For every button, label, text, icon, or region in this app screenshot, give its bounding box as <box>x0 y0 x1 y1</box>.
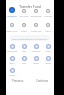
button[interactable] <box>6 22 18 33</box>
button[interactable]: Previous <box>8 78 28 84</box>
button[interactable] <box>30 43 42 53</box>
staticText: Lee <box>18 62 30 65</box>
button[interactable] <box>30 55 42 65</box>
button[interactable] <box>6 7 18 18</box>
button[interactable] <box>6 55 18 65</box>
button[interactable]: Continue <box>32 78 52 84</box>
button[interactable] <box>6 67 18 77</box>
staticText: Dana <box>30 62 42 65</box>
staticText: Wallet <box>42 14 54 17</box>
staticText: Transfer <box>6 14 18 17</box>
staticText: Sam John <box>6 50 18 53</box>
button[interactable] <box>6 43 18 53</box>
button[interactable]: Select a beneficiary to continue <box>10 35 50 41</box>
button[interactable] <box>42 43 54 53</box>
button[interactable] <box>18 7 30 18</box>
staticText: Priya <box>6 74 18 77</box>
staticText: Own Bank <box>18 29 30 32</box>
button[interactable] <box>18 55 30 65</box>
staticText: Omar <box>42 62 54 65</box>
button[interactable] <box>18 22 30 33</box>
button[interactable] <box>42 55 54 65</box>
staticText: Nina <box>42 50 54 53</box>
staticText: Own Acct <box>6 29 18 32</box>
button[interactable] <box>30 22 42 33</box>
button[interactable] <box>42 22 54 33</box>
staticText: Raj K <box>6 62 18 65</box>
staticText: Mia <box>18 50 30 53</box>
staticText: Transfer Fund <box>6 4 54 8</box>
staticText: Other Bk <box>30 29 42 32</box>
button[interactable] <box>30 7 42 18</box>
staticText: Recharge <box>30 14 42 17</box>
staticText: Bill Pay <box>18 14 30 17</box>
button[interactable] <box>42 7 54 18</box>
staticText: Continue <box>36 79 48 83</box>
staticText: Previous <box>12 79 24 83</box>
staticText: Select a beneficiary to continue <box>12 37 48 40</box>
staticText: Alex Ray <box>30 50 42 53</box>
button[interactable] <box>18 43 30 53</box>
staticText: Card <box>42 29 54 32</box>
